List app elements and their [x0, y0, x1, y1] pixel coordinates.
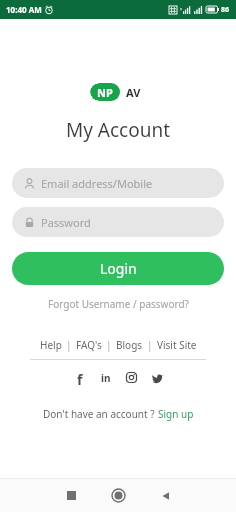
button[interactable]: FAQ's	[72, 336, 106, 354]
button[interactable]: Forgot Username / password?	[42, 295, 195, 313]
staticText: |	[66, 338, 72, 352]
button[interactable]: Twitter	[150, 370, 165, 385]
staticText: |	[106, 338, 112, 352]
button[interactable]: Facebook	[72, 370, 87, 385]
staticText: in	[101, 371, 111, 385]
staticText: 10:40 AM	[6, 4, 42, 15]
button[interactable]: Instagram	[124, 370, 139, 385]
staticText: Login	[100, 259, 137, 278]
staticText: Don't have an account ?	[43, 407, 158, 421]
button[interactable]: Email address/Mobile	[12, 168, 224, 198]
staticText: Password	[41, 215, 91, 230]
button[interactable]: Back	[142, 479, 189, 512]
button[interactable]: Home	[95, 479, 142, 512]
button[interactable]: Visit Site	[153, 336, 201, 354]
button[interactable]: Recents	[48, 479, 95, 512]
staticText: My Account	[66, 117, 171, 143]
other: NPAV logo	[90, 83, 147, 101]
button[interactable]: Login	[12, 252, 224, 285]
staticText: |	[147, 338, 153, 352]
button[interactable]: Blogs	[112, 336, 147, 354]
staticText: f	[77, 370, 83, 385]
staticText: 86	[221, 5, 230, 15]
staticText: AV	[126, 85, 141, 100]
staticText: NP	[97, 85, 113, 100]
button[interactable]: Sign up	[158, 405, 194, 423]
staticText: Email address/Mobile	[41, 176, 153, 191]
button[interactable]: Password	[12, 207, 224, 237]
button[interactable]: Help	[36, 336, 66, 354]
button[interactable]: LinkedIn	[98, 370, 113, 385]
